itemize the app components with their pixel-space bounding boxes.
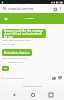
button[interactable]: Site information bbox=[2, 6, 7, 11]
button[interactable]: Recent apps bbox=[45, 90, 56, 100]
button[interactable]: Expand menu bbox=[3, 16, 8, 21]
staticText: CONNECT bbox=[25, 17, 34, 20]
button[interactable]: Ok bbox=[2, 66, 9, 71]
staticText: Because you'd like this message about th… bbox=[4, 29, 44, 38]
button[interactable]: Thumbs down bbox=[57, 75, 63, 81]
button[interactable]: Thumbs up bbox=[51, 75, 57, 81]
button[interactable]: Back bbox=[8, 90, 19, 100]
staticText: Powered by ConVer bbox=[22, 85, 43, 88]
staticText: 10:35 Cut and enter here wrapping chat bbox=[2, 57, 32, 64]
staticText: End actions about us bbox=[4, 51, 30, 55]
button[interactable]: CONNECT bbox=[25, 17, 34, 20]
staticText: Be smarter you can bbox=[5, 77, 25, 80]
button[interactable]: Because you'd like this message about th… bbox=[2, 29, 46, 38]
button[interactable]: Tabs bbox=[52, 6, 58, 12]
button[interactable]: Expand menu bbox=[0, 13, 64, 24]
staticText: e.mobilecl.com/chat bbox=[8, 7, 52, 11]
button[interactable]: More options bbox=[58, 6, 63, 11]
button[interactable]: End actions about us bbox=[2, 49, 32, 56]
staticText: Ok bbox=[4, 67, 8, 70]
staticText: 10:32 Text should be shown here as well bbox=[2, 39, 32, 45]
button[interactable]: Home bbox=[27, 90, 38, 100]
